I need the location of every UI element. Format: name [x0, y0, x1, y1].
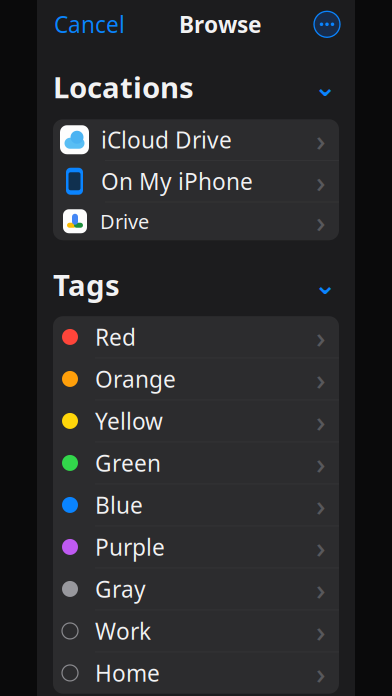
staticText: › [316, 317, 326, 356]
staticText: › [316, 162, 326, 201]
button[interactable]: Purple [53, 526, 339, 568]
staticText: Yellow [95, 406, 163, 436]
staticText: › [316, 401, 326, 440]
staticText: Cancel [54, 9, 125, 39]
staticText: Orange [95, 364, 176, 394]
staticText: Work [95, 616, 151, 646]
staticText: › [316, 611, 326, 650]
staticText: Drive [100, 208, 149, 235]
button[interactable]: Collapse Tags [311, 273, 339, 297]
button[interactable]: Red [53, 316, 339, 358]
button[interactable]: Drive [53, 202, 339, 240]
staticText: › [316, 120, 326, 159]
staticText: › [316, 202, 326, 241]
button[interactable]: On My iPhone [53, 161, 339, 202]
staticText: Locations [53, 67, 194, 106]
staticText: › [316, 443, 326, 482]
staticText: › [316, 653, 326, 692]
staticText: Home [95, 658, 160, 688]
staticText: Browse [179, 9, 262, 39]
staticText: › [316, 485, 326, 524]
button[interactable]: iCloud Drive [53, 119, 339, 160]
button[interactable]: Green [53, 442, 339, 484]
staticText: On My iPhone [101, 166, 253, 196]
button[interactable]: Collapse Locations [311, 75, 339, 99]
staticText: Green [95, 448, 161, 478]
staticText: Tags [53, 265, 120, 304]
staticText: Red [95, 322, 136, 352]
button[interactable]: Blue [53, 484, 339, 526]
staticText: Blue [95, 490, 143, 520]
staticText: Purple [95, 532, 165, 562]
staticText: › [316, 359, 326, 398]
button[interactable]: Cancel [46, 0, 133, 48]
staticText: › [316, 527, 326, 566]
staticText: › [316, 569, 326, 608]
button[interactable]: Home [53, 652, 339, 694]
button[interactable]: Yellow [53, 400, 339, 442]
staticText: ⌄ [314, 72, 336, 102]
staticText: iCloud Drive [101, 125, 232, 155]
staticText: Carrier [12, 0, 68, 3]
button[interactable]: More options [308, 5, 346, 43]
staticText: Gray [95, 574, 146, 604]
button[interactable]: Gray [53, 568, 339, 610]
staticText: ⌄ [314, 270, 336, 300]
button[interactable]: Orange [53, 358, 339, 400]
button[interactable]: Work [53, 610, 339, 652]
